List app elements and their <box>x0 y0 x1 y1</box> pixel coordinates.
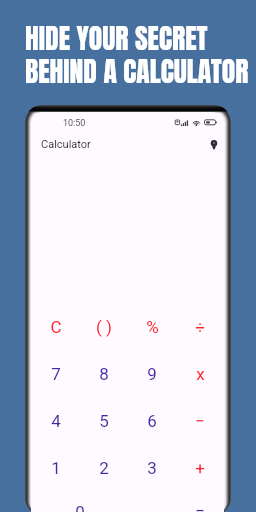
button[interactable]: 8 <box>80 350 128 397</box>
staticText: = <box>195 502 205 512</box>
staticText: C <box>50 317 62 337</box>
button[interactable]: 7 <box>31 350 80 397</box>
button[interactable]: 4 <box>31 397 80 444</box>
button[interactable]: = <box>176 496 224 512</box>
staticText: 10:50 <box>63 118 86 129</box>
staticText: 7 <box>51 364 61 384</box>
button[interactable]: 6 <box>128 397 176 444</box>
staticText: 4 <box>51 411 61 431</box>
staticText: 9 <box>147 364 157 384</box>
button[interactable]: + <box>176 444 224 491</box>
button[interactable]: 0 <box>31 496 128 512</box>
staticText: BEHIND A CALCULATOR <box>25 51 249 93</box>
staticText: 3 <box>147 458 157 478</box>
staticText: % <box>146 317 159 337</box>
staticText: 2 <box>99 458 109 478</box>
button[interactable]: 3 <box>128 444 176 491</box>
button[interactable]: 2 <box>80 444 128 491</box>
staticText: 0 <box>75 502 85 512</box>
staticText: 6 <box>147 411 157 431</box>
staticText: x <box>196 364 205 384</box>
staticText: ÷ <box>195 317 205 337</box>
button[interactable]: − <box>176 397 224 444</box>
button[interactable]: x <box>176 350 224 397</box>
staticText: ( ) <box>96 317 112 337</box>
button[interactable]: ÷ <box>176 303 224 350</box>
button[interactable]: % <box>128 303 176 350</box>
staticText: + <box>195 458 205 478</box>
staticText: HIDE YOUR SECRET <box>25 18 208 60</box>
button[interactable]: Toggle theme <box>203 134 224 156</box>
staticText: 5 <box>99 411 109 431</box>
staticText: 1 <box>51 458 61 478</box>
button[interactable]: 1 <box>31 444 80 491</box>
staticText: Calculator <box>41 138 91 151</box>
staticText: 8 <box>99 364 109 384</box>
staticText: − <box>195 411 205 431</box>
button[interactable]: 9 <box>128 350 176 397</box>
button[interactable]: C <box>31 303 80 350</box>
button[interactable]: ( ) <box>80 303 128 350</box>
button[interactable]: 5 <box>80 397 128 444</box>
